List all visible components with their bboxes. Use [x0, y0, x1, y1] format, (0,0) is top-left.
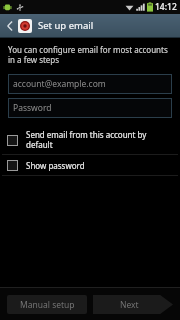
staticText: Manual setup	[20, 299, 75, 311]
staticText: account@example.com	[13, 78, 106, 90]
button[interactable]: Back	[0, 14, 180, 37]
button[interactable]: Back	[5, 18, 14, 34]
button[interactable]: Send email from this account by default	[0, 126, 180, 154]
staticText: You can configure email for most account…	[8, 44, 168, 66]
staticText: Password	[13, 102, 52, 114]
staticText: Send email from this account by default	[26, 129, 147, 151]
staticText: Next	[120, 299, 139, 311]
staticText: 14:12	[155, 1, 177, 13]
staticText: Set up email	[38, 19, 94, 32]
button[interactable]: Next	[93, 295, 173, 314]
button[interactable]: Password	[8, 98, 172, 118]
button[interactable]: Show password	[0, 155, 180, 175]
button[interactable]: Manual setup	[7, 295, 87, 314]
button[interactable]: account@example.com	[8, 74, 172, 94]
staticText: Show password	[26, 160, 85, 171]
